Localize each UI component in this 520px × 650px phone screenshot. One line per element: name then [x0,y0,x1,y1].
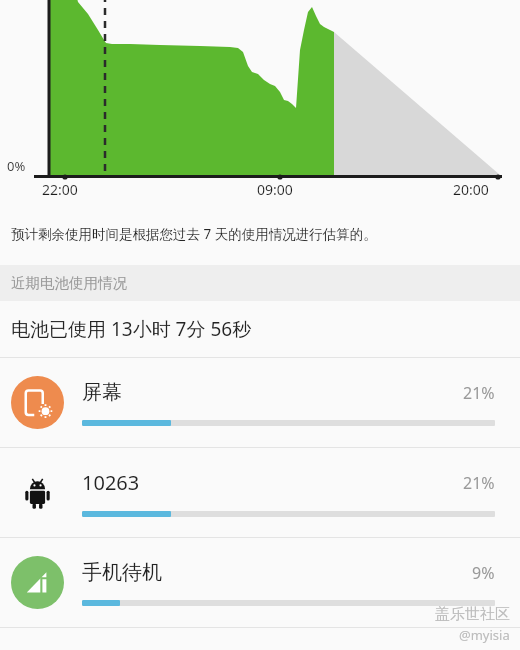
staticText: 盖乐世社区 [435,605,510,624]
staticText: 屏幕 [82,380,463,405]
staticText: 10263 [82,469,463,496]
staticText: 预计剩余使用时间是根据您过去 7 天的使用情况进行估算的。 [11,225,377,243]
staticText: 20:00 [453,180,489,199]
staticText: 21% [463,472,495,494]
staticText: 电池已使用 13小时 7分 56秒 [11,316,252,342]
button[interactable]: 10263 [0,448,520,537]
staticText: 9% [472,562,495,584]
button[interactable]: 屏幕 [0,358,520,447]
staticText: 22:00 [42,180,88,199]
other: 10263 [11,466,64,519]
other: 屏幕 [11,376,64,429]
staticText: 09:00 [257,180,293,199]
staticText: 21% [463,382,495,404]
button[interactable]: 手机待机 [0,538,520,627]
staticText: 手机待机 [82,560,472,585]
staticText: @myisia [459,626,510,644]
other: 手机待机 [11,556,64,609]
staticText: 0% [7,157,26,175]
staticText: 近期电池使用情况 [11,274,127,292]
